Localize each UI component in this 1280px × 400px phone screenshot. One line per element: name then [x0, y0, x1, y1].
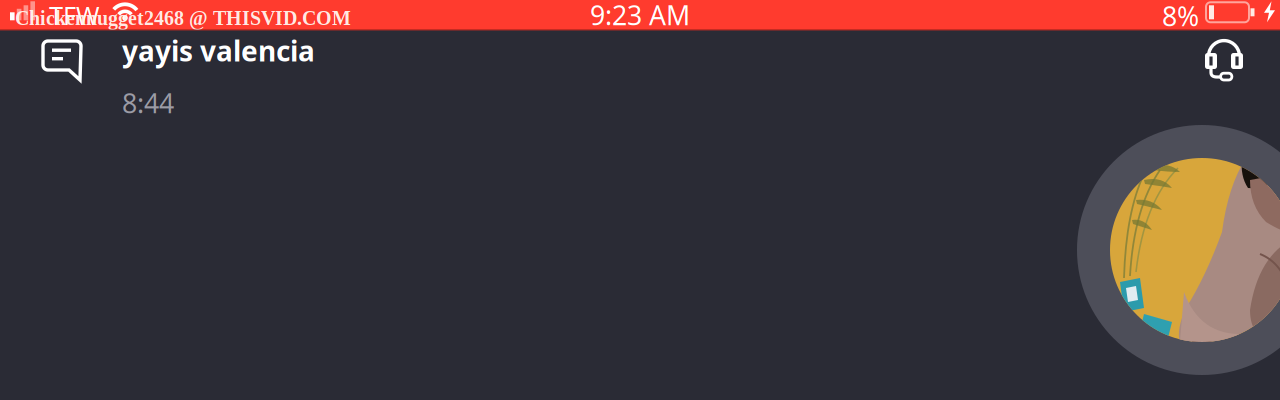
- staticText: 9:23 AM: [590, 0, 690, 33]
- staticText: 8:44: [122, 85, 174, 121]
- staticText: yayis valencia: [122, 32, 315, 69]
- staticText: Chickennugget2468 @ THISVID.COM: [15, 7, 351, 29]
- staticText: 8%: [1162, 0, 1199, 34]
- button[interactable]: Support: [1202, 0, 1280, 80]
- button[interactable]: Messages: [0, 0, 85, 83]
- staticText: TFW: [49, 0, 100, 32]
